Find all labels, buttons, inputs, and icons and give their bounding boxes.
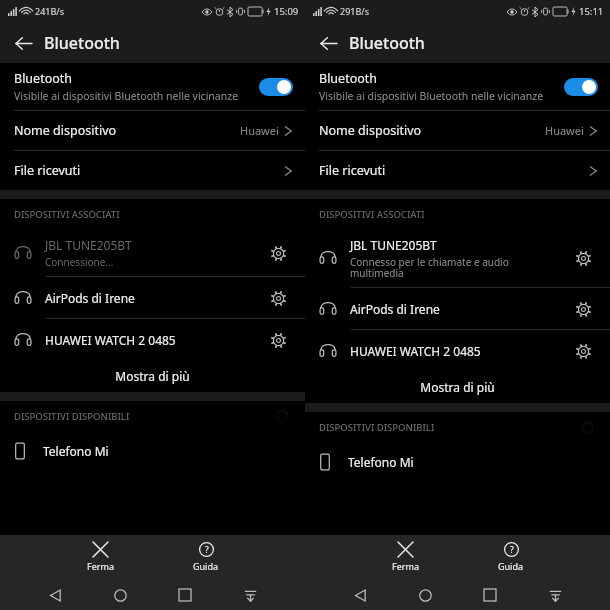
button[interactable]: Hide navigation bar: [235, 580, 265, 610]
button[interactable]: ?: [478, 540, 544, 574]
staticText: ?: [510, 544, 514, 556]
staticText: Mostra di più: [420, 379, 495, 395]
staticText: Telefono Mi: [348, 454, 414, 470]
staticText: 15:09: [274, 5, 299, 18]
button[interactable]: Mostra di più: [0, 360, 305, 392]
staticText: DISPOSITIVI ASSOCIATI: [319, 208, 425, 221]
button[interactable]: Hide navigation bar: [540, 580, 570, 610]
staticText: 15:11: [579, 5, 604, 18]
staticText: Bluetooth: [349, 32, 425, 54]
staticText: Guida: [193, 560, 219, 572]
staticText: Huawei: [240, 123, 279, 138]
staticText: ?: [205, 544, 209, 556]
button[interactable]: Telefono Mi: [0, 431, 305, 471]
staticText: AirPods di Irene: [45, 290, 135, 306]
button[interactable]: Ferma: [372, 540, 438, 574]
button[interactable]: HUAWEI WATCH 2 0485: [305, 330, 610, 371]
button[interactable]: Back: [6, 26, 40, 60]
staticText: DISPOSITIVI DISPONIBILI: [14, 410, 130, 423]
button[interactable]: ?: [173, 540, 239, 574]
staticText: JBL TUNE205BT: [350, 237, 437, 253]
button[interactable]: JBL TUNE205BT: [0, 229, 305, 276]
button[interactable]: Nome dispositivo: [0, 111, 305, 150]
staticText: 241B/s: [35, 5, 64, 17]
button[interactable]: Back: [345, 580, 375, 610]
other: Bluetooth toggle: [259, 78, 293, 96]
button[interactable]: Ferma: [67, 540, 133, 574]
button[interactable]: Settings for HUAWEI WATCH 2 0485: [263, 325, 293, 355]
button[interactable]: Settings for JBL TUNE205BT: [263, 238, 293, 268]
staticText: File ricevuti: [14, 162, 81, 179]
staticText: Visibile ai dispositivi Bluetooth nelle …: [14, 89, 239, 103]
staticText: Ferma: [87, 560, 114, 572]
button[interactable]: Nome dispositivo: [305, 111, 610, 150]
button[interactable]: Telefono Mi: [305, 442, 610, 482]
staticText: Bluetooth: [319, 70, 378, 87]
staticText: Ferma: [392, 560, 419, 572]
button[interactable]: Settings for HUAWEI WATCH 2 0485: [568, 336, 598, 366]
button[interactable]: Mostra di più: [305, 371, 610, 403]
button[interactable]: Settings for AirPods di Irene: [568, 294, 598, 324]
staticText: Nome dispositivo: [14, 122, 117, 139]
staticText: File ricevuti: [319, 162, 386, 179]
staticText: Nome dispositivo: [319, 122, 422, 139]
staticText: Mostra di più: [115, 368, 190, 384]
button[interactable]: HUAWEI WATCH 2 0485: [0, 319, 305, 360]
button[interactable]: Recents: [170, 580, 200, 610]
button[interactable]: Bluetooth: [0, 63, 305, 110]
staticText: 291B/s: [340, 5, 369, 17]
staticText: HUAWEI WATCH 2 0485: [45, 332, 176, 348]
button[interactable]: Bluetooth: [305, 63, 610, 110]
button[interactable]: Settings for JBL TUNE205BT: [568, 243, 598, 273]
staticText: Bluetooth: [44, 32, 120, 54]
button[interactable]: Settings for AirPods di Irene: [263, 283, 293, 313]
staticText: Connessione...: [45, 255, 114, 269]
button[interactable]: File ricevuti: [305, 151, 610, 190]
button[interactable]: AirPods di Irene: [0, 277, 305, 318]
staticText: Guida: [498, 560, 524, 572]
staticText: Visibile ai dispositivi Bluetooth nelle …: [319, 89, 544, 103]
staticText: HUAWEI WATCH 2 0485: [350, 343, 481, 359]
staticText: Huawei: [545, 123, 584, 138]
staticText: DISPOSITIVI DISPONIBILI: [319, 421, 435, 434]
button[interactable]: JBL TUNE205BT: [305, 229, 610, 287]
button[interactable]: Home: [410, 580, 440, 610]
button[interactable]: File ricevuti: [0, 151, 305, 190]
staticText: Bluetooth: [14, 70, 73, 87]
staticText: AirPods di Irene: [350, 301, 440, 317]
staticText: Connesso per le chiamate e audio multime…: [350, 255, 509, 280]
button[interactable]: Recents: [475, 580, 505, 610]
button[interactable]: Back: [311, 26, 345, 60]
button[interactable]: Home: [105, 580, 135, 610]
staticText: Telefono Mi: [43, 443, 109, 459]
button[interactable]: AirPods di Irene: [305, 288, 610, 329]
staticText: DISPOSITIVI ASSOCIATI: [14, 208, 120, 221]
staticText: JBL TUNE205BT: [45, 237, 132, 253]
button[interactable]: Back: [40, 580, 70, 610]
other: Bluetooth toggle: [564, 78, 598, 96]
